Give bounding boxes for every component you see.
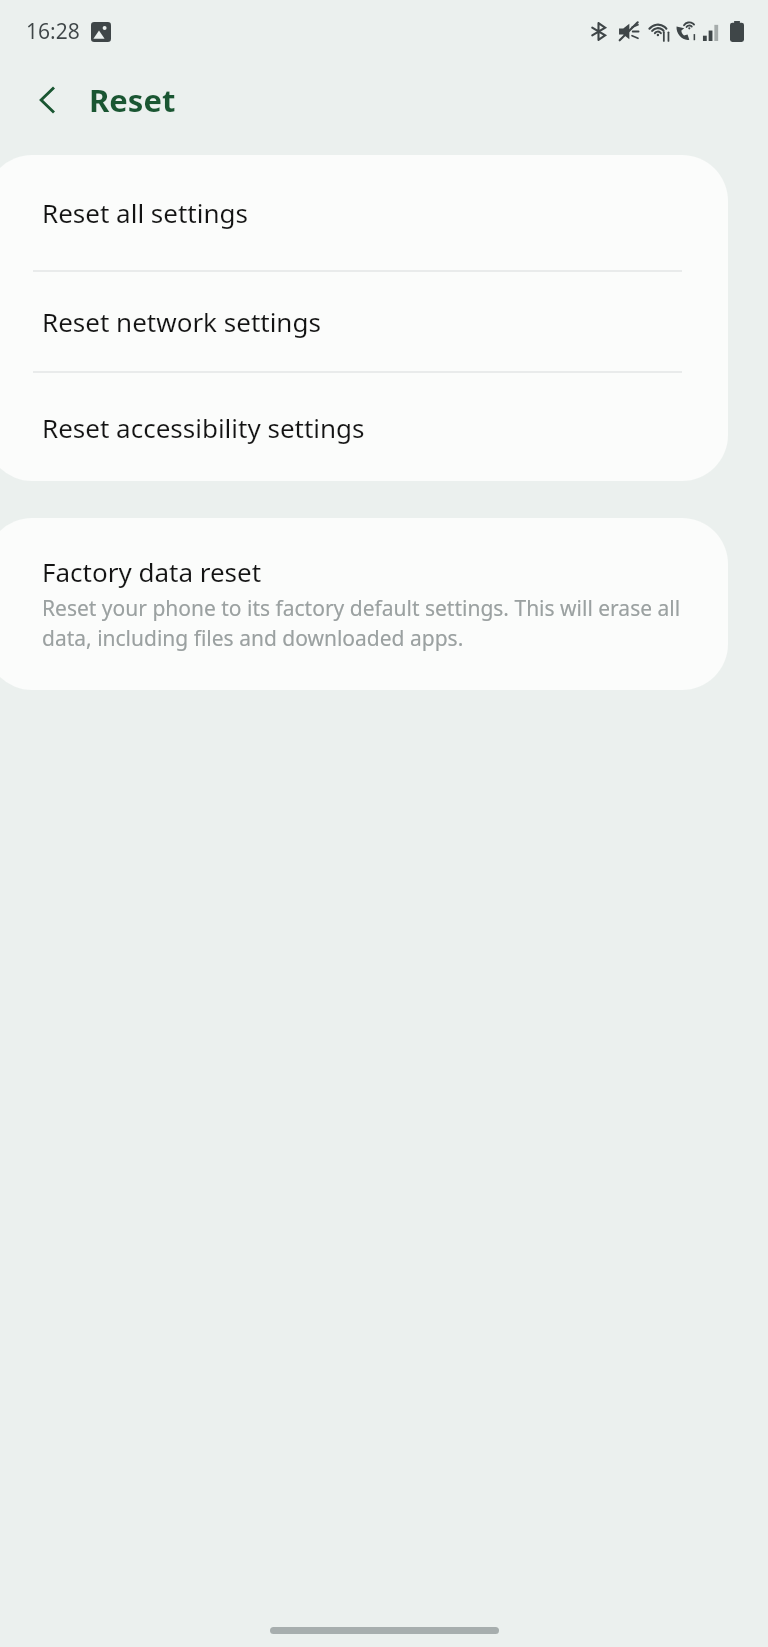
button[interactable]: Reset network settings [0, 272, 728, 371]
staticText: Factory data reset [42, 554, 262, 589]
staticText: Reset [89, 79, 176, 121]
button[interactable]: Back [19, 71, 77, 129]
staticText: Reset your phone to its factory default … [42, 594, 682, 652]
button[interactable]: Reset all settings [0, 155, 728, 270]
button[interactable]: Factory data reset [0, 518, 728, 690]
staticText: Reset all settings [42, 195, 248, 230]
staticText: Reset network settings [42, 304, 321, 339]
staticText: Reset accessibility settings [42, 410, 365, 445]
button[interactable]: Reset accessibility settings [0, 373, 728, 481]
staticText: 16:28 [26, 17, 80, 46]
